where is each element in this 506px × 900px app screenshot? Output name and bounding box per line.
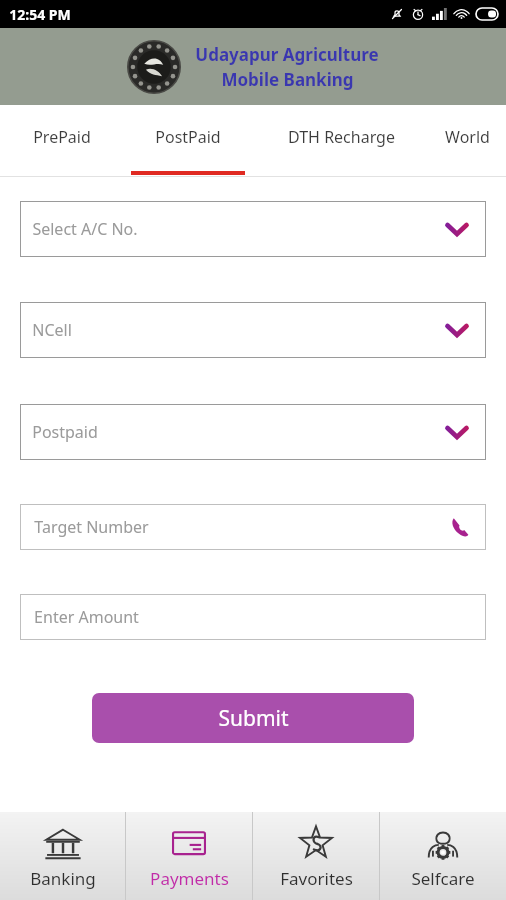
button[interactable]: DTH Recharge bbox=[253, 105, 429, 177]
button[interactable]: PrePaid bbox=[0, 105, 123, 177]
staticText: NCell bbox=[32, 319, 72, 341]
staticText: Select A/C No. bbox=[32, 218, 138, 240]
other: Selfcare bbox=[422, 823, 464, 865]
button[interactable]: Enter Amount bbox=[20, 594, 486, 640]
staticText: Enter Amount bbox=[34, 606, 139, 628]
staticText: 12:54 PM bbox=[9, 5, 71, 24]
other: Favorites bbox=[295, 823, 337, 865]
button[interactable]: Favorites bbox=[253, 812, 379, 900]
other: Open Select A/C No. dropdown bbox=[443, 215, 471, 243]
staticText: Selfcare bbox=[411, 867, 475, 890]
staticText: Favorites bbox=[280, 867, 353, 890]
staticText: Submit bbox=[218, 704, 289, 733]
staticText: Payments bbox=[150, 867, 229, 890]
staticText: Mobile Banking bbox=[221, 68, 354, 91]
staticText: Target Number bbox=[34, 516, 149, 538]
button[interactable]: NCell bbox=[20, 302, 486, 358]
button[interactable]: Banking bbox=[0, 812, 125, 900]
button[interactable]: Selfcare bbox=[380, 812, 506, 900]
button[interactable]: World bbox=[429, 105, 506, 177]
staticText: PostPaid bbox=[155, 126, 221, 148]
staticText: PrePaid bbox=[33, 126, 91, 148]
other: Open NCell dropdown bbox=[443, 316, 471, 344]
staticText: DTH Recharge bbox=[288, 126, 395, 148]
other: Banking bbox=[42, 823, 84, 865]
button[interactable]: Submit bbox=[92, 693, 414, 743]
button[interactable]: PostPaid bbox=[123, 105, 253, 177]
staticText: Postpaid bbox=[32, 421, 98, 443]
other: Open Postpaid dropdown bbox=[443, 418, 471, 446]
staticText: Udayapur Agriculture bbox=[195, 43, 379, 66]
staticText: World bbox=[445, 126, 490, 148]
button[interactable]: Select A/C No. bbox=[20, 201, 486, 257]
button[interactable]: Target Number bbox=[20, 504, 486, 550]
button[interactable]: Payments bbox=[126, 812, 252, 900]
other: Payments bbox=[168, 823, 210, 865]
other: Pick contact bbox=[446, 514, 472, 540]
button[interactable]: Postpaid bbox=[20, 404, 486, 460]
staticText: Banking bbox=[30, 867, 96, 890]
